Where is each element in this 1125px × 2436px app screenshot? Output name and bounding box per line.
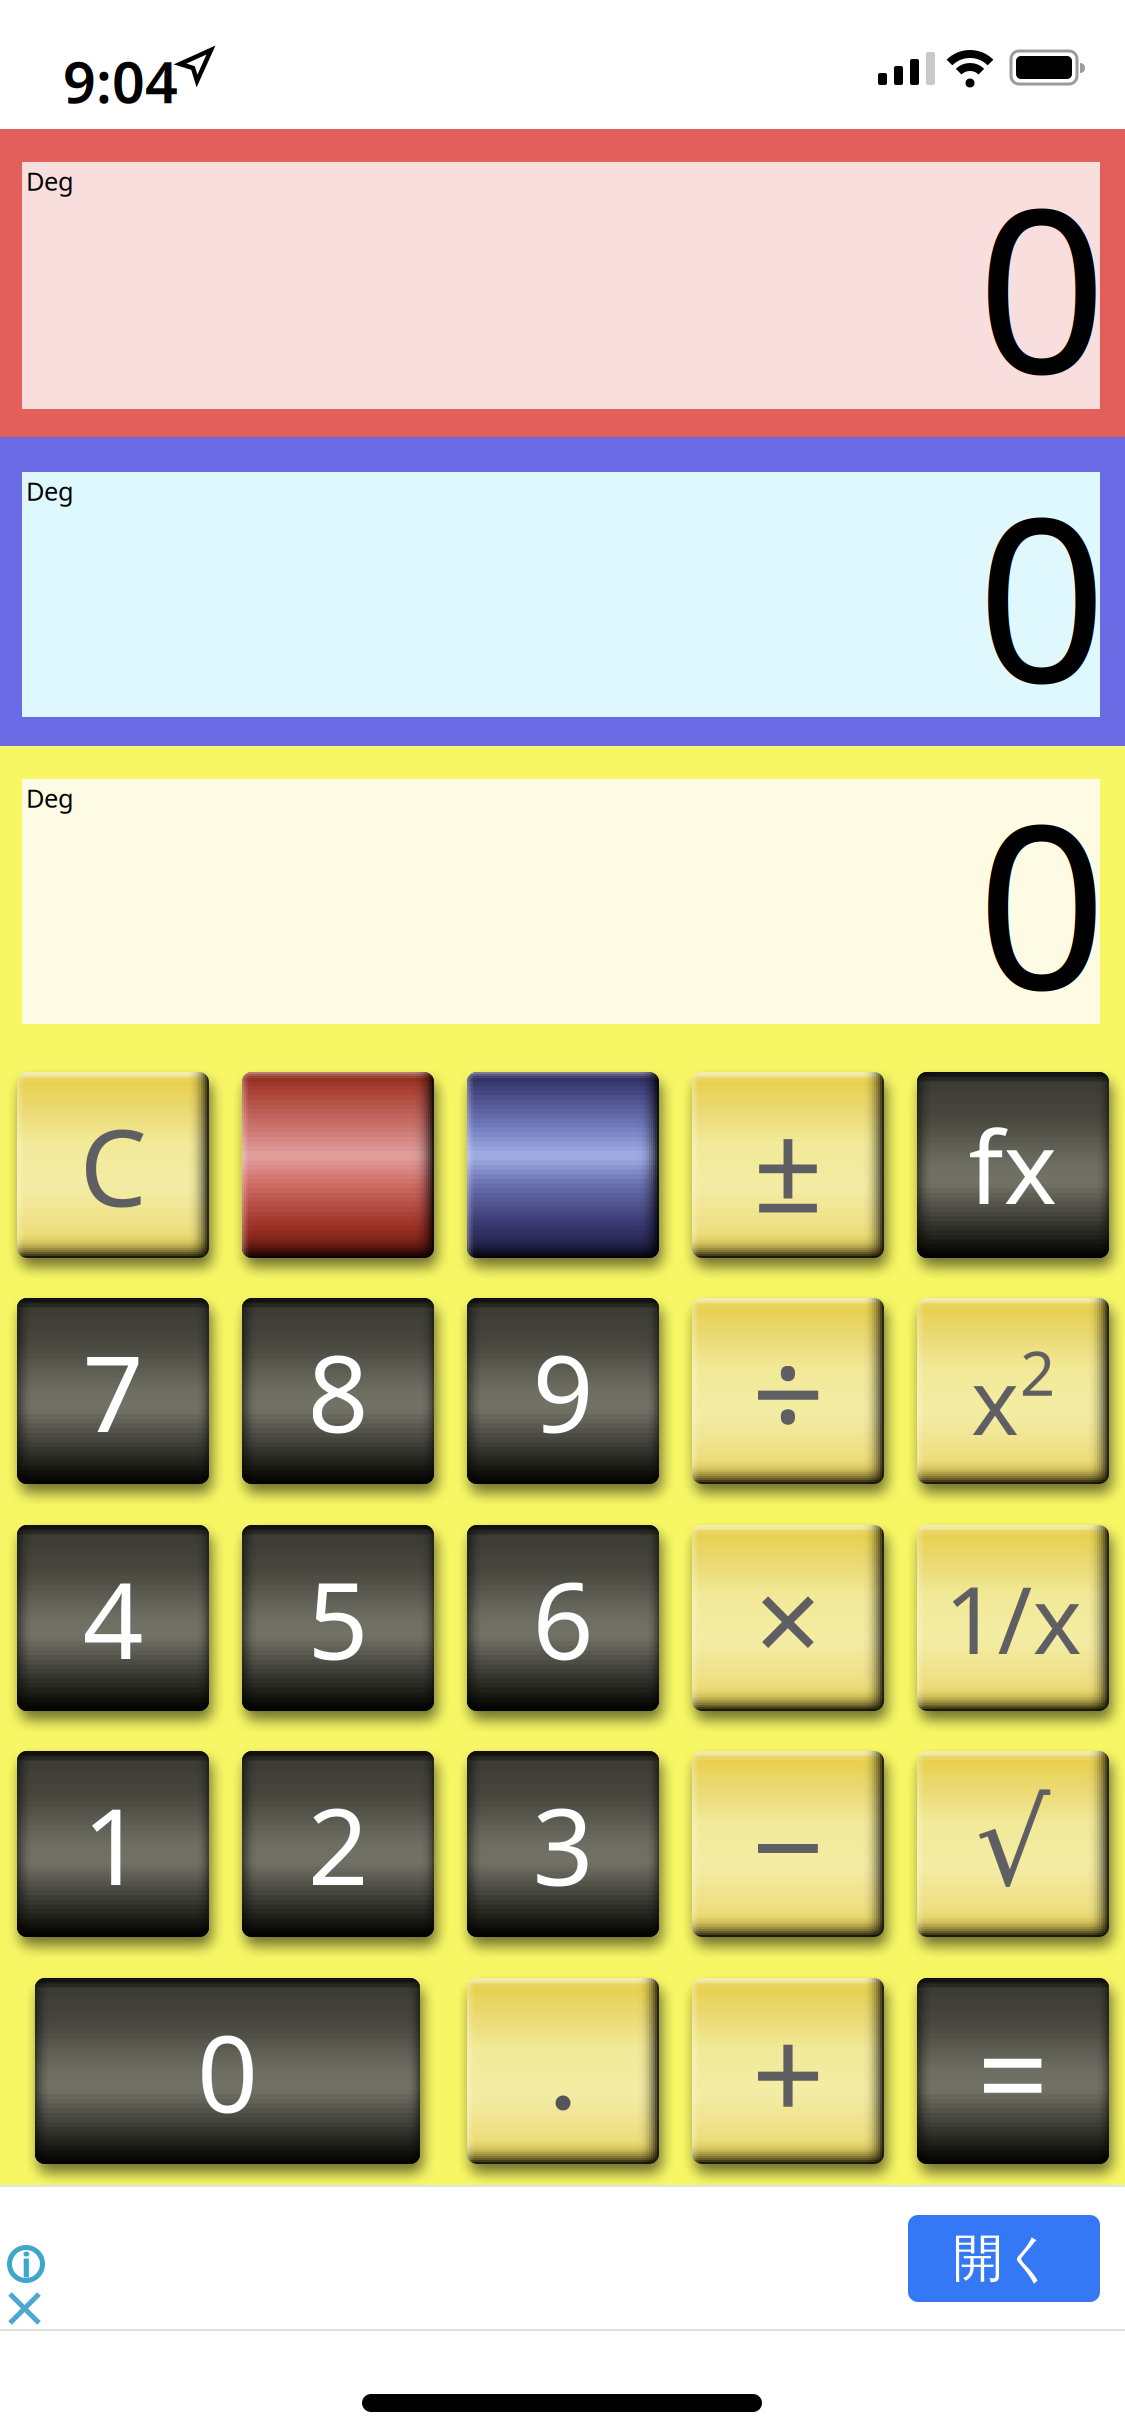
button[interactable]: Minus xyxy=(692,1751,884,1937)
staticText: 0 xyxy=(977,135,1107,436)
staticText: = xyxy=(977,1988,1049,2154)
staticText: 4 xyxy=(82,1547,143,1689)
button[interactable]: 7 xyxy=(17,1298,209,1484)
staticText: Deg xyxy=(26,474,74,508)
staticText: x xyxy=(971,1340,1019,1460)
staticText: ÷ xyxy=(751,1306,824,1476)
staticText: Deg xyxy=(26,781,74,815)
staticText: 7 xyxy=(82,1320,143,1462)
staticText: − xyxy=(751,1759,824,1929)
staticText: 5 xyxy=(307,1547,368,1689)
button[interactable]: Multiply xyxy=(692,1525,884,1711)
button[interactable]: 2 xyxy=(242,1751,434,1937)
button[interactable]: Close ad xyxy=(10,2294,40,2324)
button[interactable]: Equals xyxy=(917,1978,1109,2164)
staticText: + xyxy=(751,1986,824,2156)
button[interactable]: Divide xyxy=(692,1298,884,1484)
staticText: 2 xyxy=(1020,1331,1055,1413)
button[interactable]: Ad information xyxy=(7,2245,45,2283)
staticText: 0 xyxy=(977,751,1107,1052)
button[interactable]: 4 xyxy=(17,1525,209,1711)
staticText: fx xyxy=(968,1098,1057,1232)
button[interactable]: Clear xyxy=(17,1072,209,1258)
button[interactable]: 9 xyxy=(467,1298,659,1484)
staticText: 9 xyxy=(532,1320,593,1462)
staticText: √ xyxy=(975,1777,1050,1911)
staticText: Deg xyxy=(26,164,74,198)
button[interactable]: Functions xyxy=(917,1072,1109,1258)
button[interactable]: Square root xyxy=(917,1751,1109,1937)
staticText: 6 xyxy=(532,1547,593,1689)
button[interactable]: 0 xyxy=(35,1978,420,2164)
button[interactable]: Blue memory xyxy=(467,1072,659,1258)
staticText: × xyxy=(754,1540,821,1696)
button[interactable]: 1 xyxy=(17,1751,209,1937)
staticText: 開く xyxy=(952,2227,1055,2290)
button[interactable]: 5 xyxy=(242,1525,434,1711)
button[interactable]: Decimal point xyxy=(467,1978,659,2164)
staticText: 0 xyxy=(197,2000,258,2142)
button[interactable]: Red memory xyxy=(242,1072,434,1258)
staticText: i xyxy=(21,2241,31,2287)
button[interactable]: Open xyxy=(908,2215,1100,2302)
staticText: 1/x xyxy=(944,1556,1081,1680)
staticText: 3 xyxy=(532,1773,593,1915)
button[interactable]: 6 xyxy=(467,1525,659,1711)
button[interactable]: 8 xyxy=(242,1298,434,1484)
staticText: 2 xyxy=(307,1773,368,1915)
button[interactable]: Plus xyxy=(692,1978,884,2164)
staticText: 1 xyxy=(82,1773,143,1915)
staticText: ± xyxy=(753,1084,823,1246)
button[interactable]: Square xyxy=(917,1298,1109,1484)
button[interactable]: 3 xyxy=(467,1751,659,1937)
button[interactable]: Reciprocal xyxy=(917,1525,1109,1711)
staticText: 0 xyxy=(977,444,1107,745)
staticText: 9:04 xyxy=(63,43,178,119)
staticText: C xyxy=(79,1094,146,1236)
staticText: 8 xyxy=(307,1320,368,1462)
button[interactable]: Plus minus xyxy=(692,1072,884,1258)
